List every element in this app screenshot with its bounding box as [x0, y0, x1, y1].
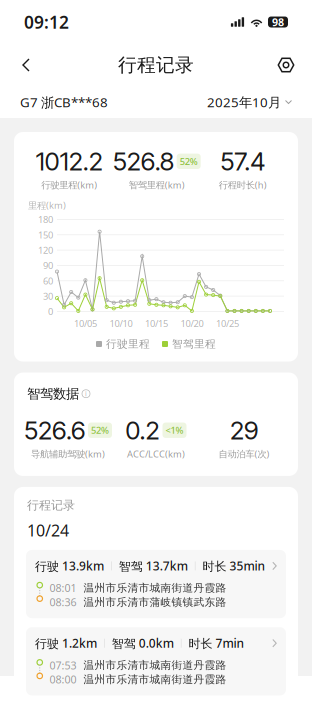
- staticText: 行驶里程(km): [41, 179, 97, 191]
- staticText: 08:00: [49, 672, 76, 686]
- staticText: 60: [43, 275, 53, 287]
- staticText: ACC/LCC(km): [127, 448, 185, 460]
- staticText: 智驾数据: [27, 385, 79, 402]
- staticText: 30: [43, 290, 53, 302]
- button[interactable]: 行驶 13.9km: [26, 550, 286, 618]
- staticText: 温州市乐清市城南街道丹霞路: [83, 581, 226, 594]
- staticText: 180: [38, 213, 53, 226]
- staticText: 10/10: [109, 317, 132, 330]
- staticText: 智驾里程: [172, 337, 216, 350]
- staticText: 120: [38, 244, 53, 256]
- staticText: 行驶 13.9km: [35, 558, 104, 574]
- staticText: 智驾里程(km): [129, 179, 185, 191]
- staticText: 150: [38, 229, 53, 241]
- staticText: 行程记录: [27, 498, 75, 513]
- staticText: 智驾 13.7km: [119, 558, 188, 574]
- staticText: <1%: [165, 424, 183, 436]
- staticText: 10/15: [145, 317, 168, 330]
- staticText: 0: [48, 305, 53, 318]
- staticText: 10/05: [74, 317, 97, 330]
- staticText: 0.2: [125, 415, 159, 446]
- staticText: 07:53: [49, 658, 76, 672]
- staticText: 行程记录: [118, 53, 194, 76]
- staticText: 里程(km): [28, 199, 66, 211]
- button[interactable]: 行驶 1.2km: [26, 627, 286, 695]
- staticText: 52%: [180, 155, 198, 167]
- staticText: 08:01: [49, 581, 76, 595]
- staticText: 自动泊车(次): [218, 448, 269, 460]
- staticText: 智驾 0.0km: [112, 635, 174, 651]
- staticText: 08:36: [49, 595, 76, 609]
- staticText: 导航辅助驾驶(km): [31, 448, 105, 460]
- staticText: 2025年10月: [207, 93, 281, 111]
- staticText: 10/20: [180, 317, 203, 330]
- staticText: 90: [43, 259, 53, 272]
- staticText: 时长 35min: [203, 558, 266, 574]
- staticText: 52%: [91, 424, 109, 436]
- staticText: 10/24: [27, 520, 69, 541]
- staticText: 温州市乐清市蒲岐镇镇武东路: [83, 596, 226, 609]
- staticText: 温州市乐清市城南街道丹霞路: [83, 659, 226, 672]
- staticText: 时长 7min: [189, 635, 245, 651]
- staticText: 98: [272, 15, 284, 29]
- button[interactable]: Settings: [269, 48, 303, 82]
- staticText: i: [85, 389, 87, 398]
- staticText: 行驶 1.2km: [35, 635, 97, 651]
- staticText: 行程时长(h): [219, 179, 267, 191]
- staticText: 526.6: [24, 415, 85, 446]
- button[interactable]: 2025年10月: [207, 93, 292, 111]
- staticText: G7 浙CB***68: [20, 93, 108, 111]
- staticText: 57.4: [220, 146, 265, 177]
- button[interactable]: Back: [9, 48, 43, 82]
- staticText: 1012.2: [36, 146, 103, 177]
- staticText: 温州市乐清市城南街道丹霞路: [83, 673, 226, 686]
- staticText: 29: [230, 415, 258, 446]
- staticText: 09:12: [24, 10, 69, 33]
- staticText: 行驶里程: [106, 337, 150, 350]
- staticText: 526.8: [113, 146, 174, 177]
- staticText: 10/25: [216, 317, 239, 330]
